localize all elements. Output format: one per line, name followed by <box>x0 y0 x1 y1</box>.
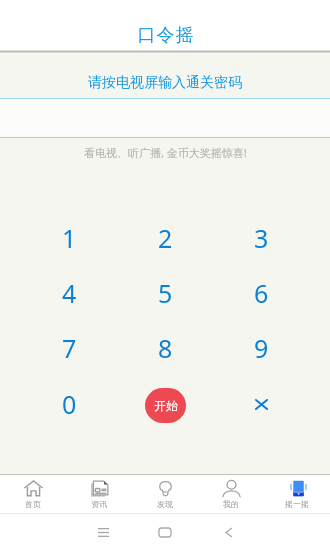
staticText: 4 <box>62 276 77 310</box>
button[interactable]: 我的 <box>198 475 264 513</box>
staticText: 资讯 <box>91 499 107 509</box>
staticText: 开始 <box>154 398 178 413</box>
button[interactable]: 0 <box>21 376 117 431</box>
staticText: 口令摇 <box>137 24 194 46</box>
button[interactable]: 6 <box>213 265 309 320</box>
button[interactable]: Delete <box>213 376 309 431</box>
button[interactable]: Back <box>211 514 247 550</box>
staticText: 2 <box>158 221 173 255</box>
button[interactable]: 3 <box>213 210 309 265</box>
staticText: 6 <box>254 276 269 310</box>
button[interactable]: 开始 <box>145 388 186 423</box>
button[interactable]: 4 <box>21 265 117 320</box>
button[interactable]: 9 <box>213 320 309 375</box>
staticText: 9 <box>254 331 269 365</box>
button[interactable]: 2 <box>117 210 213 265</box>
staticText: 1 <box>62 221 77 255</box>
staticText: 0 <box>62 387 77 421</box>
staticText: 5 <box>158 276 173 310</box>
button[interactable]: 发现 <box>132 475 198 513</box>
button[interactable]: 1 <box>21 210 117 265</box>
staticText: 看电视、听广播, 金币大奖摇惊喜! <box>84 145 247 160</box>
staticText: 我的 <box>223 499 239 509</box>
staticText: 摇一摇 <box>285 499 309 509</box>
button[interactable]: Home <box>147 514 183 550</box>
staticText: 发现 <box>157 499 173 509</box>
staticText: 8 <box>158 331 173 365</box>
staticText: 7 <box>62 331 77 365</box>
button[interactable]: 7 <box>21 320 117 375</box>
button[interactable]: 5 <box>117 265 213 320</box>
button[interactable]: 资讯 <box>66 475 132 513</box>
button[interactable]: Recent apps <box>85 514 121 550</box>
staticText: 3 <box>254 221 269 255</box>
staticText: 首页 <box>25 499 41 509</box>
button[interactable]: 摇一摇 <box>264 475 330 513</box>
button[interactable]: 首页 <box>0 475 66 513</box>
button[interactable]: 8 <box>117 320 213 375</box>
staticText: 请按电视屏输入通关密码 <box>88 74 242 92</box>
